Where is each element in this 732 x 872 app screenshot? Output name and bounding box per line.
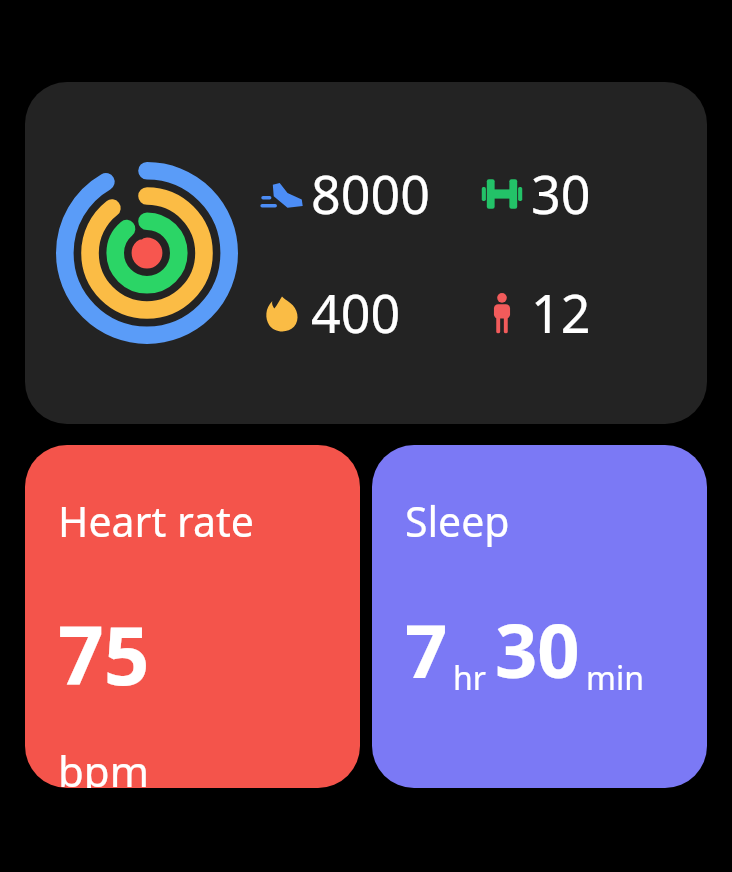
staticText: 400 bbox=[311, 277, 401, 348]
staticText: min bbox=[586, 656, 644, 700]
staticText: bpm bbox=[58, 742, 149, 788]
button[interactable]: Sleep bbox=[372, 445, 707, 788]
staticText: 30 bbox=[531, 158, 591, 229]
button[interactable]: Stand hours bbox=[479, 277, 699, 348]
other: Stand hours bbox=[479, 290, 525, 336]
other: Steps bbox=[259, 171, 305, 217]
staticText: 8000 bbox=[311, 158, 430, 229]
button[interactable]: Steps bbox=[259, 158, 479, 229]
button[interactable]: Activity rings bbox=[25, 82, 707, 424]
staticText: 30 bbox=[495, 599, 580, 700]
staticText: 7 bbox=[405, 599, 448, 700]
staticText: hr bbox=[453, 656, 486, 700]
button[interactable]: Calories bbox=[259, 277, 479, 348]
button[interactable]: Exercise minutes bbox=[479, 158, 699, 229]
staticText: Heart rate bbox=[58, 493, 254, 549]
other: Activity rings bbox=[47, 153, 247, 353]
other: Exercise minutes bbox=[479, 171, 525, 217]
staticText: Sleep bbox=[405, 493, 510, 549]
other: Calories bbox=[259, 290, 305, 336]
staticText: 75 bbox=[58, 599, 150, 708]
button[interactable]: Heart rate bbox=[25, 445, 360, 788]
staticText: 12 bbox=[531, 277, 591, 348]
